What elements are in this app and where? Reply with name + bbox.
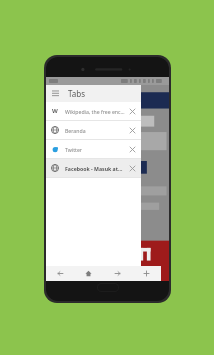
button[interactable]: Close tab bbox=[127, 106, 137, 116]
staticText: Facebook - Masuk atau... bbox=[65, 165, 125, 172]
button[interactable]: Back bbox=[46, 266, 74, 281]
button[interactable]: Home bbox=[74, 266, 103, 281]
staticText: Beranda bbox=[65, 127, 125, 134]
button[interactable]: Menu bbox=[51, 89, 60, 98]
button[interactable]: Menu bbox=[46, 85, 141, 102]
staticText: Tabs bbox=[68, 88, 86, 99]
button[interactable]: Twitter bbox=[46, 140, 141, 158]
button[interactable]: Close tab bbox=[127, 163, 137, 173]
button[interactable]: New tab bbox=[132, 266, 161, 281]
button[interactable]: Facebook - Masuk atau... bbox=[46, 159, 141, 177]
button[interactable]: Forward bbox=[103, 266, 132, 281]
button[interactable]: Close tab bbox=[127, 144, 137, 154]
staticText: Twitter bbox=[65, 146, 125, 153]
staticText: Wikipedia, the free encyc... bbox=[65, 108, 125, 115]
button[interactable]: W bbox=[46, 102, 141, 120]
button[interactable]: Beranda bbox=[46, 121, 141, 139]
staticText: W bbox=[52, 107, 58, 115]
button[interactable]: Close tab bbox=[127, 125, 137, 135]
